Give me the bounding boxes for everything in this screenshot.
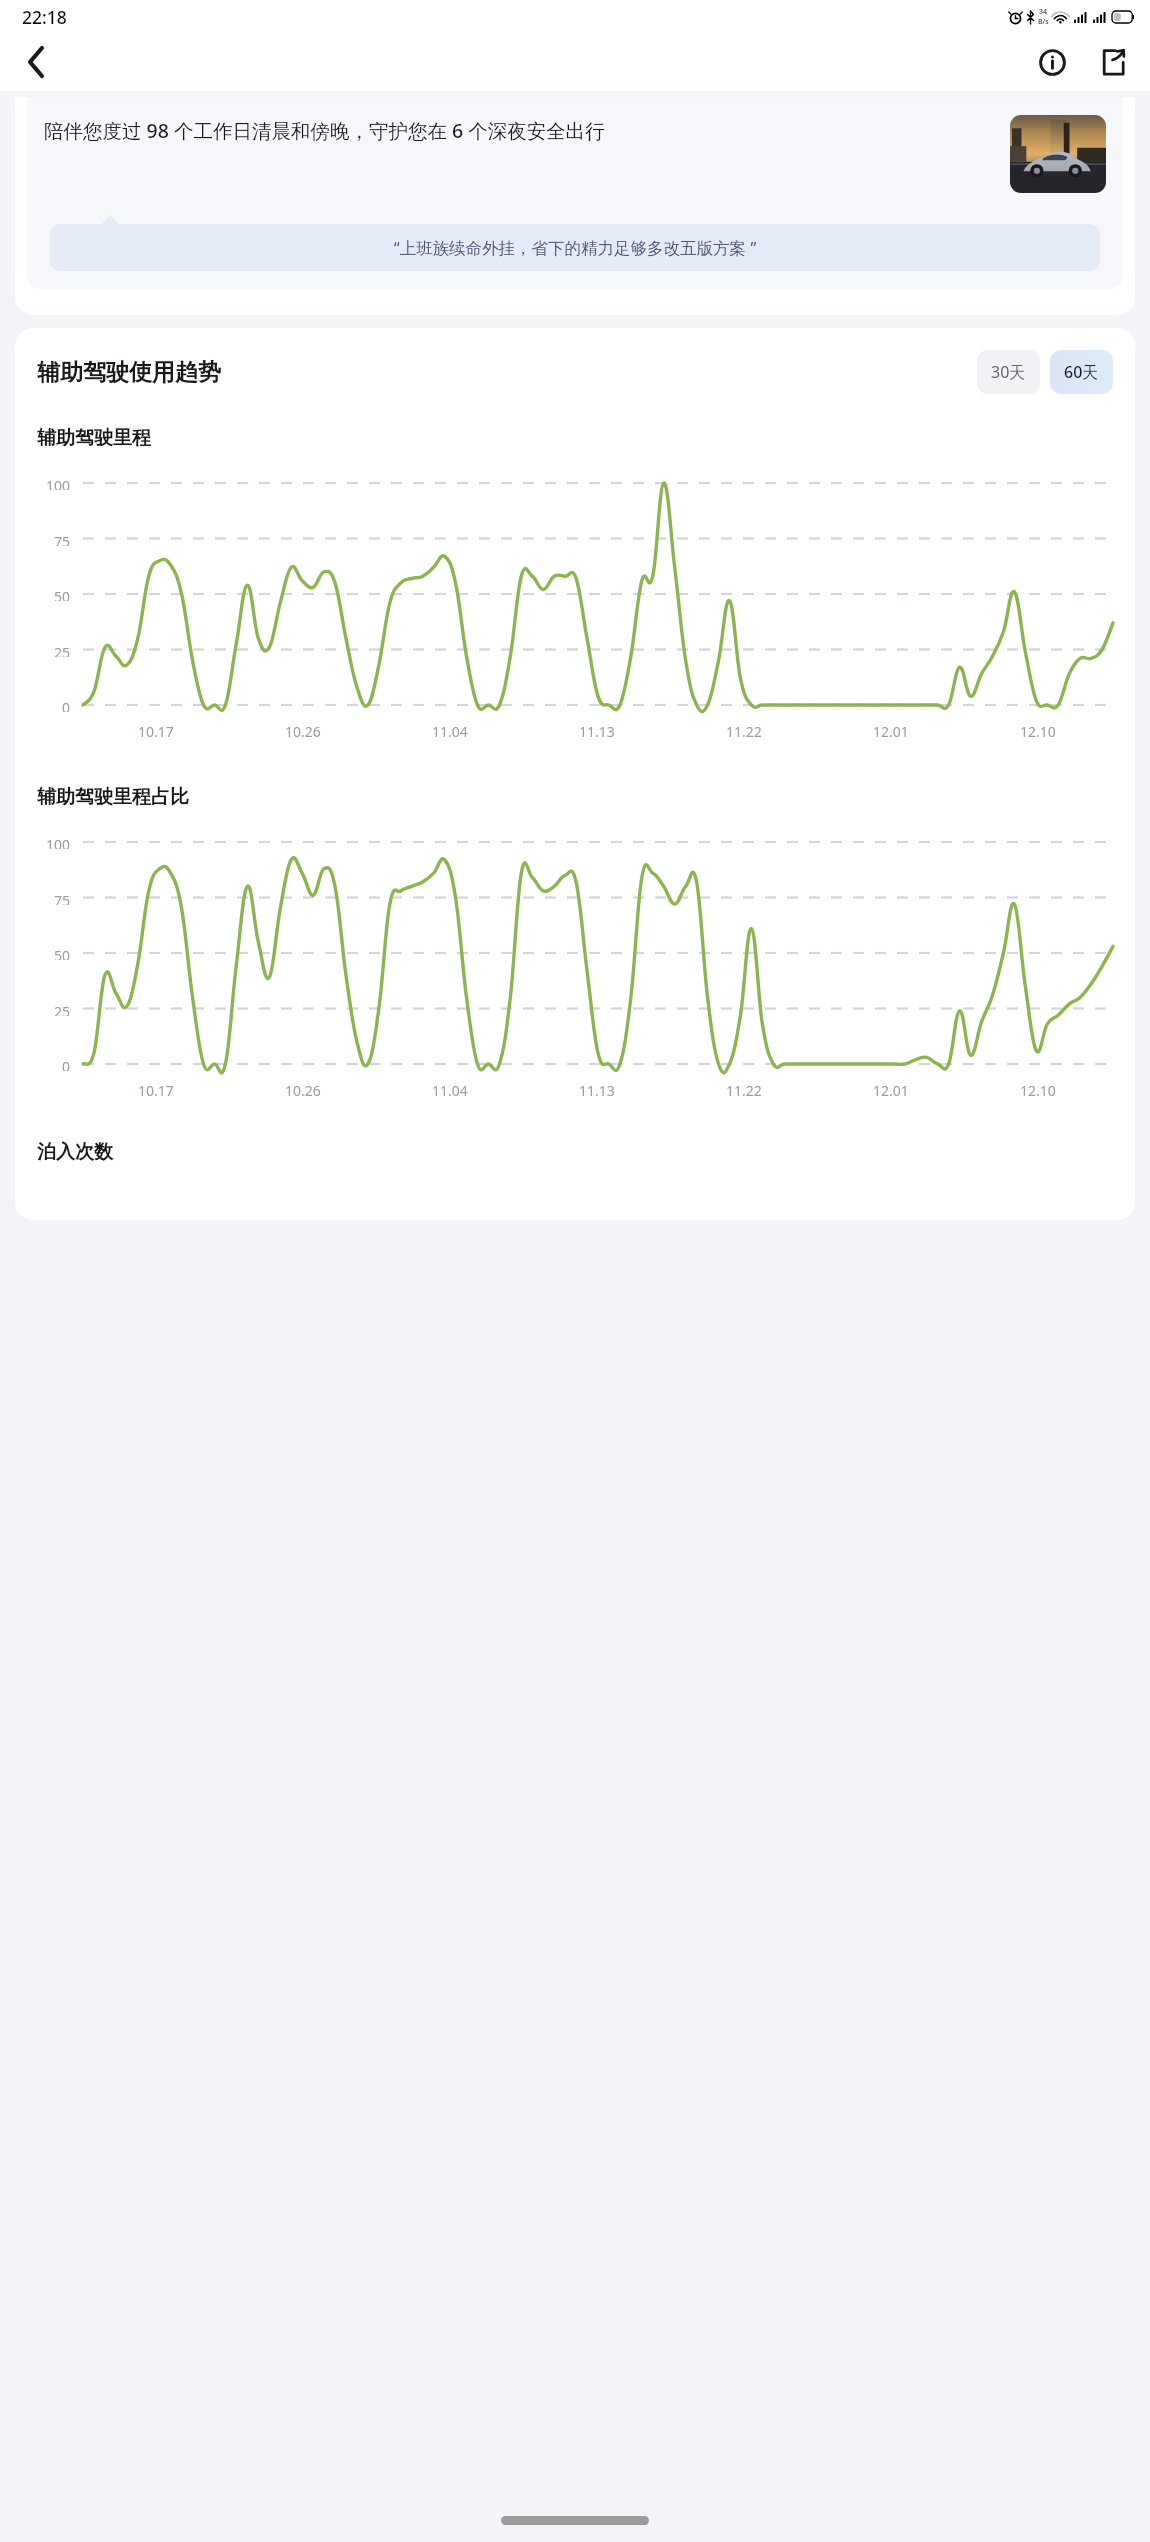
staticText: 30天 (991, 361, 1026, 383)
staticText: 11.22 (726, 1081, 762, 1100)
staticText: 辅助驾驶里程 (37, 426, 151, 450)
staticText: 陪伴您度过 98 个工作日清晨和傍晚，守护您在 6 个深夜安全出行 (44, 117, 1000, 144)
staticText: 10.17 (138, 1081, 174, 1100)
staticText: 11.13 (579, 1081, 615, 1100)
staticText: 12.01 (873, 1081, 909, 1100)
staticText: 50 (54, 946, 71, 960)
staticText: 11.04 (432, 722, 468, 741)
staticText: 75 (54, 891, 71, 905)
staticText: 0 (62, 698, 71, 712)
staticText: 75 (54, 532, 71, 546)
staticText: 0 (62, 1057, 71, 1071)
staticText: 12.10 (1020, 1081, 1056, 1100)
staticText: 50 (54, 587, 71, 601)
staticText: 60天 (1064, 361, 1099, 383)
staticText: 11.04 (432, 1081, 468, 1100)
button[interactable]: 60天 (1050, 350, 1113, 394)
staticText: 34 (1039, 7, 1048, 17)
staticText: 25 (54, 643, 71, 657)
button[interactable]: Back (14, 40, 58, 84)
staticText: 泊入次数 (37, 1140, 113, 1164)
staticText: 10.26 (285, 1081, 321, 1100)
button[interactable]: 陪伴您度过 98 个工作日清晨和傍晚，守护您在 6 个深夜安全出行 (15, 97, 1135, 315)
staticText: 辅助驾驶里程占比 (37, 785, 189, 809)
staticText: “上班族续命外挂，省下的精力足够多改五版方案 ” (64, 236, 1086, 259)
staticText: 100 (46, 835, 71, 849)
staticText: 11.22 (726, 722, 762, 741)
staticText: B/s (1038, 17, 1049, 27)
button[interactable]: Info (1030, 40, 1074, 84)
staticText: 12.10 (1020, 722, 1056, 741)
staticText: 25 (54, 1002, 71, 1016)
staticText: 辅助驾驶使用趋势 (37, 358, 221, 387)
button[interactable]: 30天 (977, 350, 1040, 394)
staticText: 11.13 (579, 722, 615, 741)
staticText: 22:18 (22, 5, 67, 29)
staticText: 100 (46, 476, 71, 490)
button[interactable]: Share (1090, 40, 1134, 84)
staticText: 10.26 (285, 722, 321, 741)
staticText: 10.17 (138, 722, 174, 741)
staticText: 12.01 (873, 722, 909, 741)
